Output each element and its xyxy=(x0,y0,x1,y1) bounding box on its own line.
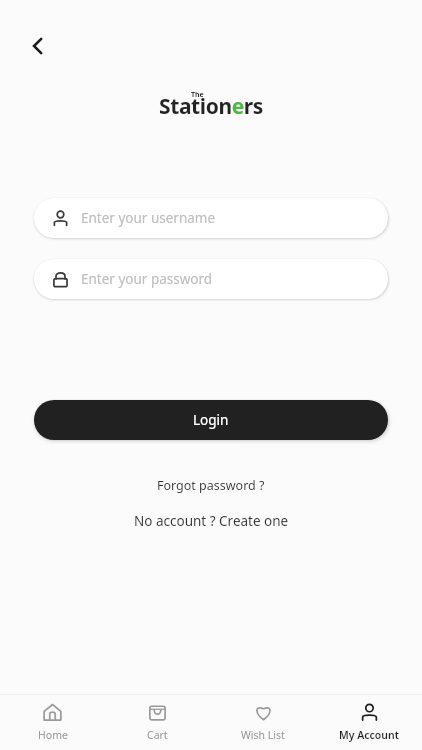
button[interactable]: Cart xyxy=(105,695,210,750)
staticText: Enter your password xyxy=(81,270,213,288)
button[interactable]: Login xyxy=(34,400,388,440)
button[interactable]: No account ? Create one xyxy=(122,508,301,534)
button[interactable]: Home xyxy=(0,695,105,750)
staticText: The xyxy=(191,90,204,100)
button[interactable]: Forgot password ? xyxy=(145,473,277,498)
staticText: Stationers xyxy=(159,92,263,121)
button[interactable]: Wish List xyxy=(210,695,316,750)
staticText: Home xyxy=(38,728,68,742)
button[interactable]: Enter your username xyxy=(34,198,388,238)
staticText: Enter your username xyxy=(81,209,216,227)
button[interactable]: Enter your password xyxy=(34,259,388,299)
staticText: My Account xyxy=(339,728,399,742)
staticText: No account ? Create one xyxy=(134,512,289,530)
staticText: Wish List xyxy=(241,728,285,742)
button[interactable]: Back xyxy=(16,24,60,68)
staticText: Cart xyxy=(147,728,168,742)
staticText: Login xyxy=(193,411,229,429)
button[interactable]: My Account xyxy=(316,695,422,750)
staticText: Forgot password ? xyxy=(157,477,265,494)
